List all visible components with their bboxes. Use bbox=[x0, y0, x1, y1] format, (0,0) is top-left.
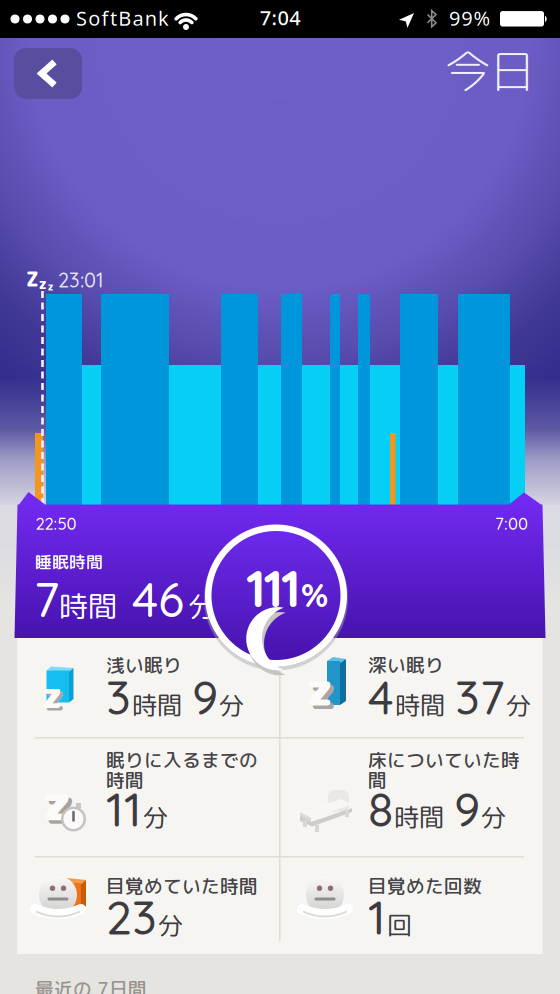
staticText: z bbox=[44, 673, 64, 722]
staticText: 23 bbox=[106, 888, 157, 946]
staticText: 分 bbox=[188, 585, 217, 626]
staticText: 7:00 bbox=[495, 513, 528, 534]
staticText: 23:01 bbox=[58, 267, 104, 292]
staticText: SoftBank bbox=[76, 5, 169, 31]
staticText: 3 bbox=[106, 668, 131, 726]
staticText: z bbox=[38, 273, 46, 294]
staticText: 37 bbox=[455, 668, 505, 726]
staticText: 時間 bbox=[395, 687, 445, 723]
staticText: z bbox=[42, 766, 72, 836]
staticText: 時間 bbox=[394, 799, 444, 835]
staticText: 46 bbox=[132, 569, 184, 629]
staticText: 床についていた時 bbox=[368, 747, 520, 773]
staticText: 深い眠り bbox=[368, 652, 444, 678]
staticText: 111 bbox=[246, 556, 301, 620]
staticText: 分 bbox=[506, 687, 531, 723]
staticText: 時間 bbox=[132, 687, 182, 723]
staticText: 浅い眠り bbox=[106, 652, 182, 678]
staticText: 7 bbox=[34, 569, 59, 629]
staticText: 8 bbox=[368, 780, 393, 838]
staticText: 分 bbox=[219, 687, 244, 723]
staticText: 目覚めた回数 bbox=[368, 873, 482, 899]
staticText: 9 bbox=[454, 780, 480, 838]
staticText: 時間 bbox=[59, 585, 117, 626]
staticText: 分 bbox=[158, 907, 183, 943]
staticText: 分 bbox=[481, 799, 506, 835]
staticText: z bbox=[306, 657, 333, 720]
staticText: Z bbox=[26, 265, 39, 293]
staticText: 目覚めていた時間 bbox=[106, 873, 258, 899]
staticText: 9 bbox=[192, 668, 218, 726]
staticText: 4 bbox=[368, 668, 394, 726]
staticText: 時間 bbox=[106, 767, 144, 793]
staticText: z bbox=[42, 671, 62, 719]
staticText: 11 bbox=[106, 780, 142, 838]
staticText: z bbox=[47, 279, 53, 294]
staticText: 今日 bbox=[445, 39, 535, 103]
staticText: 間 bbox=[368, 767, 387, 793]
staticText: z bbox=[45, 769, 75, 840]
staticText: 最近の 7日間 bbox=[35, 976, 147, 994]
staticText: 99% bbox=[449, 5, 491, 31]
staticText: 1 bbox=[368, 888, 386, 946]
staticText: 眠りに入るまでの bbox=[106, 747, 258, 773]
staticText: 7:04 bbox=[260, 4, 300, 31]
staticText: 分 bbox=[143, 799, 168, 835]
button[interactable]: Back bbox=[14, 48, 82, 99]
staticText: % bbox=[301, 574, 328, 615]
staticText: 回 bbox=[387, 907, 412, 943]
staticText: 睡眠時間 bbox=[35, 550, 103, 574]
staticText: 22:50 bbox=[35, 513, 76, 534]
staticText: z bbox=[310, 660, 337, 724]
